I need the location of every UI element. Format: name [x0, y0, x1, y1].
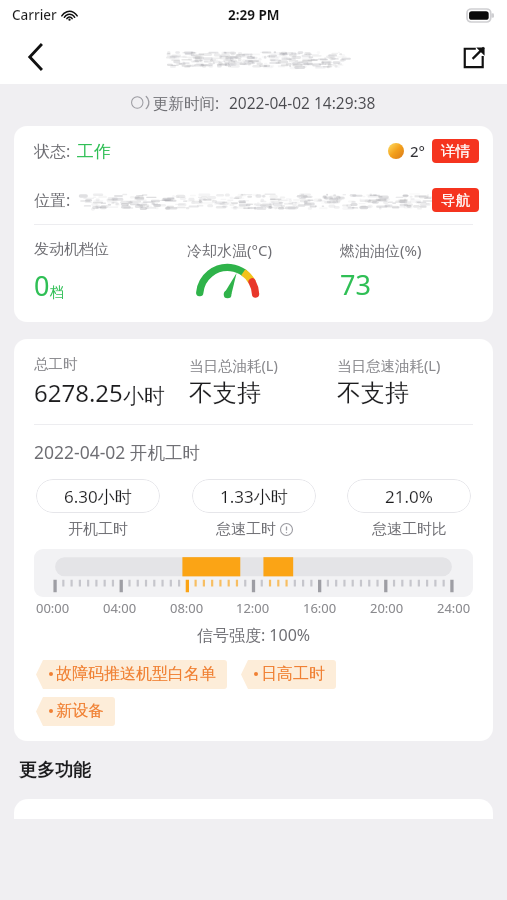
- button[interactable]: 6.30小时: [36, 479, 160, 513]
- staticText: 16:00: [303, 599, 337, 617]
- staticText: 开机工时: [68, 520, 128, 539]
- staticText: Carrier: [12, 6, 57, 24]
- staticText: 21.0%: [385, 485, 433, 508]
- staticText: 总工时: [34, 355, 78, 373]
- staticText: 发动机档位: [34, 240, 109, 259]
- staticText: 燃油油位(%): [340, 240, 422, 260]
- button[interactable]: 21.0%: [347, 479, 471, 513]
- staticText: 导航: [441, 191, 470, 209]
- button[interactable]: 日高工时: [241, 660, 336, 689]
- staticText: 冷却水温(°C): [187, 240, 272, 260]
- staticText: 73: [340, 266, 371, 303]
- staticText: 工作: [77, 141, 111, 162]
- staticText: 24:00: [437, 599, 471, 617]
- staticText: 位置:: [34, 189, 71, 211]
- staticText: 2022-04-02 开机工时: [34, 440, 200, 464]
- button[interactable]: 新设备: [36, 697, 115, 726]
- staticText: 更新时间:: [153, 92, 220, 113]
- staticText: 12:00: [236, 599, 270, 617]
- button[interactable]: 详情: [432, 139, 479, 163]
- staticText: 故障码推送机型白名单: [56, 664, 216, 684]
- staticText: 当日怠速油耗(L): [337, 355, 441, 375]
- staticText: 怠速工时比: [372, 520, 447, 539]
- staticText: 不支持: [337, 378, 409, 408]
- staticText: 2:29 PM: [228, 6, 280, 24]
- staticText: 小时: [123, 383, 165, 409]
- button[interactable]: 1.33小时: [192, 479, 316, 513]
- staticText: 怠速工时: [216, 520, 276, 539]
- staticText: 6278.25: [34, 376, 123, 409]
- staticText: 6.30小时: [64, 485, 132, 508]
- staticText: 0: [34, 267, 50, 304]
- staticText: 更多功能: [19, 759, 91, 782]
- staticText: 20:00: [370, 599, 404, 617]
- staticText: 08:00: [170, 599, 204, 617]
- staticText: 日高工时: [261, 664, 325, 684]
- staticText: 不支持: [189, 378, 261, 408]
- button[interactable]: 导航: [432, 188, 479, 212]
- staticText: 00:00: [36, 599, 70, 617]
- staticText: 2022-04-02 14:29:38: [229, 92, 376, 113]
- staticText: 04:00: [103, 599, 137, 617]
- button[interactable]: 故障码推送机型白名单: [36, 660, 227, 689]
- button[interactable]: Back: [14, 36, 56, 78]
- staticText: 2°: [410, 141, 425, 161]
- staticText: 当日总油耗(L): [189, 355, 278, 375]
- staticText: 1.33小时: [220, 485, 288, 508]
- staticText: 新设备: [56, 701, 104, 721]
- staticText: 状态:: [34, 140, 71, 162]
- staticText: 信号强度: 100%: [14, 624, 493, 646]
- button[interactable]: Share: [452, 36, 494, 78]
- staticText: 详情: [441, 142, 470, 160]
- staticText: 档: [50, 284, 64, 302]
